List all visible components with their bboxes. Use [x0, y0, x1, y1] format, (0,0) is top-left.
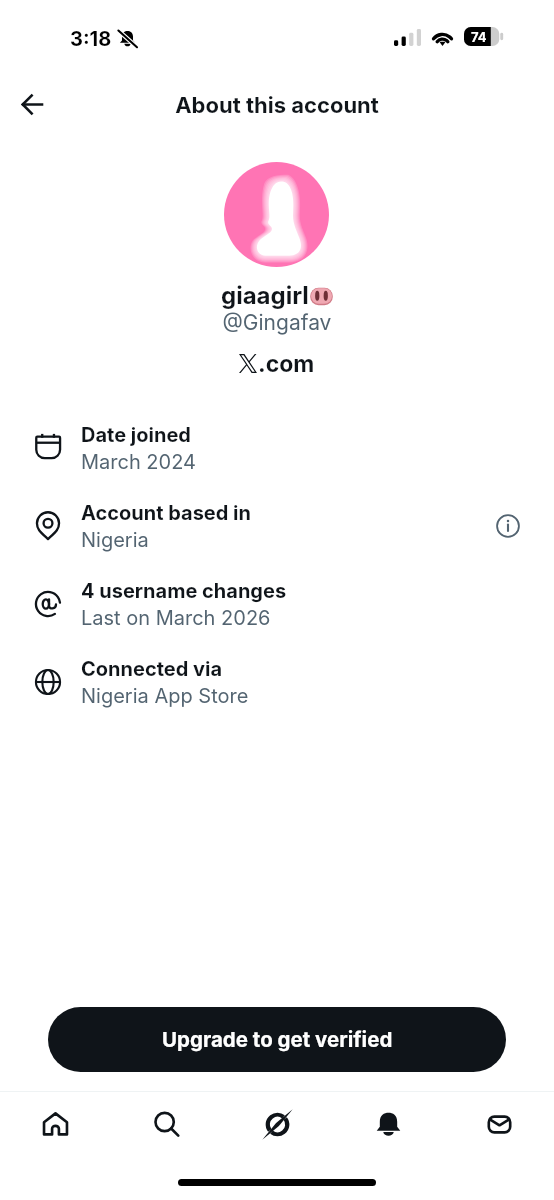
button[interactable]: Grok — [245, 1096, 309, 1152]
button[interactable]: Messages — [467, 1096, 531, 1152]
button[interactable]: Back — [10, 82, 54, 126]
button[interactable]: Notifications — [356, 1096, 420, 1152]
button[interactable]: Search — [134, 1096, 198, 1152]
staticText: Last on March 2026 — [81, 606, 271, 630]
staticText: .com — [258, 350, 315, 378]
button[interactable]: Connected via — [0, 643, 554, 721]
staticText: Nigeria — [81, 528, 149, 552]
staticText: 74 — [471, 29, 487, 45]
button[interactable]: Upgrade to get verified — [48, 1007, 506, 1072]
staticText: 3:18 — [70, 27, 112, 51]
button[interactable]: More information — [490, 508, 526, 544]
button[interactable]: Account based in — [0, 487, 554, 565]
staticText: Account based in — [81, 501, 251, 525]
staticText: @Gingafav — [0, 310, 554, 335]
staticText: Connected via — [81, 657, 223, 681]
staticText: Date joined — [81, 423, 191, 447]
staticText: March 2024 — [81, 450, 196, 474]
button[interactable]: Date joined — [0, 409, 554, 487]
staticText: giaagirl — [221, 281, 309, 310]
staticText: Upgrade to get verified — [162, 1027, 393, 1052]
button[interactable]: Home — [23, 1096, 87, 1152]
staticText: Nigeria App Store — [81, 684, 249, 708]
staticText: About this account — [0, 92, 554, 119]
staticText: 4 username changes — [81, 579, 287, 603]
button[interactable]: 4 username changes — [0, 565, 554, 643]
